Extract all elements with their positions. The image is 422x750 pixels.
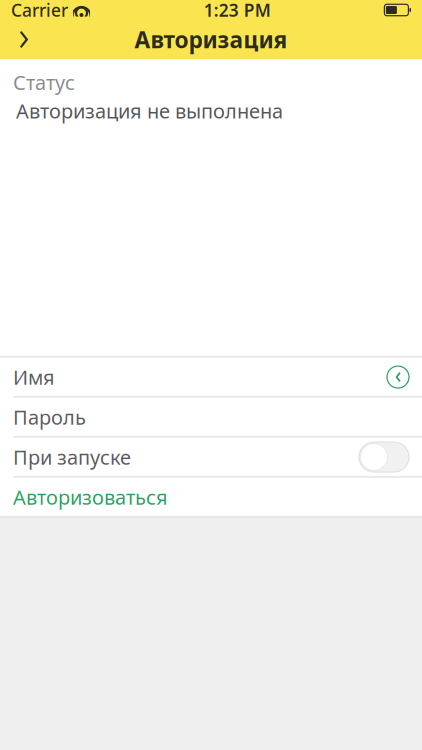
staticText: Авторизоваться — [13, 484, 168, 510]
button[interactable]: При запуске — [0, 438, 422, 477]
button[interactable]: Пароль — [0, 398, 422, 437]
button[interactable]: Back — [2, 20, 46, 59]
staticText: Авторизация — [134, 24, 287, 54]
staticText: Пароль — [13, 404, 86, 430]
staticText: Авторизация не выполнена — [16, 98, 283, 124]
staticText: Carrier — [11, 0, 68, 21]
staticText: При запуске — [13, 444, 131, 470]
staticText: Имя — [13, 364, 55, 390]
button[interactable]: Имя — [0, 358, 422, 397]
staticText: 1:23 PM — [204, 0, 271, 21]
staticText: Статус — [13, 69, 75, 96]
button[interactable]: Авторизоваться — [0, 478, 422, 517]
